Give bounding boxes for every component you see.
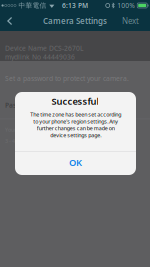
staticText: The time zone has been set according to … [30,111,121,139]
staticText: 3 - 4 characters long. [5,137,55,144]
staticText: Password [5,101,36,110]
staticText: 6:13 PM [62,1,88,10]
staticText: Your password must be 6-20 characters [5,126,102,133]
staticText: Successful [51,95,99,107]
staticText: mydlink No 44449036 [5,52,75,61]
staticText: Next [122,16,139,26]
staticText: Camera Settings [43,16,107,26]
staticText: OK [69,156,82,169]
button[interactable]: OK [15,152,136,175]
staticText: 中華電信 [19,1,47,10]
button[interactable]: Back [0,11,18,31]
staticText: 100% [117,1,135,10]
staticText: Device Name DCS-2670L [5,44,83,52]
button[interactable]: Next [122,11,150,31]
staticText: Set a password to protect your camera. [5,74,129,83]
